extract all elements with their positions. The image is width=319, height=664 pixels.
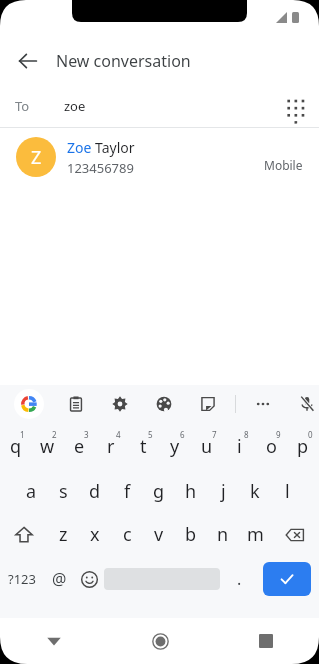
button[interactable]: w [31, 423, 63, 470]
button[interactable]: More options [250, 391, 276, 417]
staticText: a [26, 479, 37, 504]
button[interactable]: p [287, 423, 319, 470]
button[interactable]: Settings [107, 391, 133, 417]
button[interactable]: r [95, 423, 127, 470]
staticText: Mobile [264, 157, 303, 173]
staticText: k [250, 479, 260, 504]
button[interactable]: Home [107, 618, 213, 664]
staticText: x [90, 522, 100, 547]
button[interactable]: u [191, 423, 223, 470]
button[interactable]: Recents [213, 618, 319, 664]
button[interactable]: Back [0, 618, 107, 664]
button[interactable]: t [127, 423, 159, 470]
staticText: i [237, 434, 242, 459]
staticText: o [266, 434, 277, 459]
button[interactable]: q [0, 423, 31, 470]
staticText: n [217, 522, 229, 547]
staticText: s [59, 479, 68, 504]
staticText: r [107, 434, 115, 459]
staticText: z [59, 522, 68, 547]
staticText: . [237, 568, 242, 590]
button[interactable]: m [239, 513, 271, 556]
button[interactable]: Clipboard [63, 391, 89, 417]
button[interactable]: Google search [14, 389, 44, 419]
staticText: Z [31, 145, 42, 170]
staticText: v [154, 522, 164, 547]
button[interactable]: b [175, 513, 207, 556]
staticText: q [10, 434, 22, 459]
staticText: w [40, 434, 55, 459]
staticText: 9 [276, 429, 281, 440]
staticText: g [153, 479, 165, 504]
button[interactable]: j [207, 470, 239, 513]
button[interactable]: Shift [0, 513, 47, 556]
button[interactable]: g [143, 470, 175, 513]
button[interactable]: s [47, 470, 79, 513]
staticText: 123456789 [67, 159, 134, 177]
button[interactable]: e [63, 423, 95, 470]
staticText: 6 [180, 429, 185, 440]
staticText: y [170, 434, 180, 459]
button[interactable]: ?123 [0, 556, 44, 602]
button[interactable]: i [223, 423, 255, 470]
staticText: j [221, 479, 226, 504]
button[interactable]: v [143, 513, 175, 556]
button[interactable]: y [159, 423, 191, 470]
staticText: zoe [64, 97, 86, 115]
staticText: m [247, 522, 264, 547]
staticText: t [140, 434, 147, 459]
button[interactable]: d [79, 470, 111, 513]
button[interactable]: Stickers [195, 391, 221, 417]
button[interactable]: . [220, 556, 259, 602]
staticText: d [89, 479, 101, 504]
button[interactable]: l [271, 470, 303, 513]
staticText: h [185, 479, 197, 504]
button[interactable]: Backspace [271, 513, 319, 556]
staticText: c [123, 522, 132, 547]
staticText: f [124, 479, 131, 504]
button[interactable]: Back [8, 41, 48, 81]
button[interactable]: z [47, 513, 79, 556]
button[interactable]: n [207, 513, 239, 556]
staticText: 0 [308, 429, 313, 440]
button[interactable]: Send [263, 562, 311, 596]
staticText: 1 [20, 429, 25, 440]
button[interactable]: f [111, 470, 143, 513]
staticText: 3 [84, 429, 89, 440]
button[interactable]: Voice input off [294, 391, 319, 417]
button[interactable]: o [255, 423, 287, 470]
staticText: 7 [212, 429, 217, 440]
button[interactable]: a [15, 470, 47, 513]
staticText: 5 [148, 429, 153, 440]
staticText: New conversation [56, 50, 191, 72]
staticText: b [185, 522, 197, 547]
button[interactable]: c [111, 513, 143, 556]
staticText: l [285, 479, 290, 504]
staticText: To [15, 97, 30, 115]
button[interactable]: x [79, 513, 111, 556]
staticText: ?123 [8, 570, 36, 588]
button[interactable]: h [175, 470, 207, 513]
staticText: 2 [52, 429, 57, 440]
staticText: e [74, 434, 85, 459]
staticText: Zoe Taylor [67, 138, 135, 157]
button[interactable]: @ [44, 556, 74, 602]
button[interactable]: Themes [151, 391, 177, 417]
staticText: 8 [244, 429, 249, 440]
button[interactable]: Emoji [74, 556, 104, 602]
button[interactable]: Z [0, 128, 319, 186]
staticText: 4 [116, 429, 121, 440]
staticText: p [297, 434, 309, 459]
staticText: u [201, 434, 213, 459]
button[interactable]: k [239, 470, 271, 513]
staticText: @ [52, 568, 67, 590]
button[interactable]: Dialpad [275, 88, 311, 124]
